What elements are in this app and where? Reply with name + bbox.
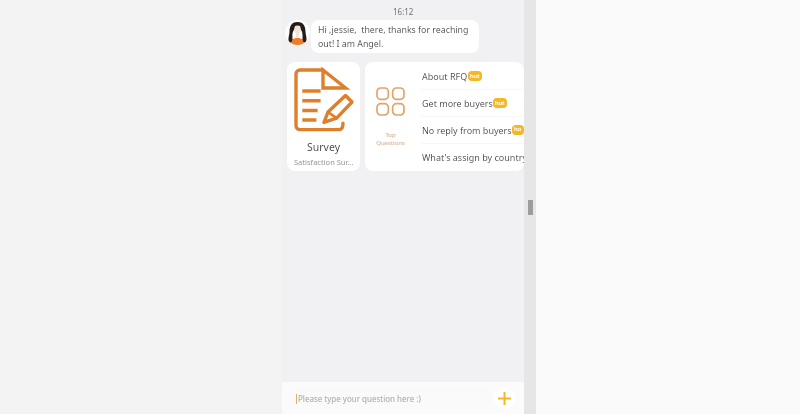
staticText: What's assign by country xyxy=(422,151,524,163)
staticText: Get more buyers xyxy=(422,97,493,109)
staticText: Please type your question here :) xyxy=(298,393,421,404)
staticText: hot xyxy=(495,99,505,107)
button[interactable]: Get more buyers xyxy=(415,89,524,116)
staticText: hot xyxy=(514,125,522,135)
staticText: Satisfaction Sur... xyxy=(294,157,354,167)
button[interactable]: What's assign by country xyxy=(415,143,524,170)
button[interactable]: Please type your question here :) xyxy=(287,387,492,410)
staticText: Hi ,jessie, there, thanks for reaching o… xyxy=(318,24,473,50)
staticText: hot xyxy=(470,72,480,80)
staticText: Top Questions xyxy=(376,131,405,147)
staticText: No reply from buyers xyxy=(422,124,512,136)
staticText: Survey xyxy=(307,140,340,154)
button[interactable]: About RFQ xyxy=(415,62,524,89)
staticText: 16:12 xyxy=(393,6,414,17)
button[interactable]: No reply from buyers xyxy=(415,116,524,143)
button[interactable]: Add xyxy=(494,388,515,409)
button[interactable]: Survey xyxy=(287,62,360,171)
staticText: About RFQ xyxy=(422,70,468,82)
